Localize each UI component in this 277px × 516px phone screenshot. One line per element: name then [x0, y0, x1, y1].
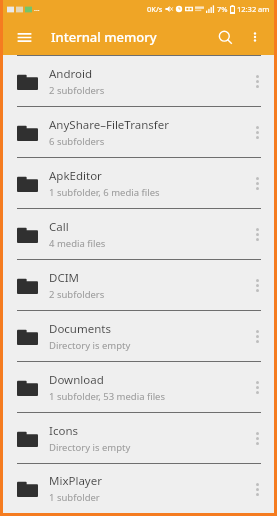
- button[interactable]: MixPlayer: [3, 464, 274, 513]
- button[interactable]: More options for ApkEditor: [246, 163, 268, 203]
- button[interactable]: ApkEditor: [3, 158, 274, 208]
- button[interactable]: Android: [3, 56, 274, 106]
- button[interactable]: More options for AnyShare–FileTransfer: [246, 112, 268, 152]
- staticText: Android: [49, 66, 93, 82]
- staticText: ...: [34, 4, 40, 14]
- staticText: Directory is empty: [49, 339, 131, 352]
- button[interactable]: More options for Call: [246, 214, 268, 254]
- button[interactable]: More options for Documents: [246, 316, 268, 356]
- button[interactable]: Documents: [3, 311, 274, 361]
- staticText: 0K/s: [147, 4, 163, 14]
- button[interactable]: Call: [3, 209, 274, 259]
- staticText: 2 subfolders: [49, 288, 105, 301]
- staticText: AnyShare–FileTransfer: [49, 117, 169, 133]
- button[interactable]: More options for Icons: [246, 418, 268, 458]
- button[interactable]: More options: [240, 22, 270, 52]
- button[interactable]: Icons: [3, 413, 274, 463]
- staticText: Internal memory: [51, 28, 157, 46]
- button[interactable]: AnyShare–FileTransfer: [3, 107, 274, 157]
- staticText: Download: [49, 372, 104, 388]
- button[interactable]: Search: [210, 22, 240, 52]
- staticText: 2 subfolders: [49, 84, 105, 97]
- staticText: Icons: [49, 423, 78, 439]
- staticText: 6 subfolders: [49, 135, 105, 148]
- staticText: ApkEditor: [49, 168, 102, 184]
- button[interactable]: More options for MixPlayer: [246, 469, 268, 509]
- button[interactable]: More options for Android: [246, 61, 268, 101]
- staticText: MixPlayer: [49, 473, 102, 489]
- button[interactable]: DCIM: [3, 260, 274, 310]
- button[interactable]: Open navigation drawer: [9, 22, 39, 52]
- button[interactable]: More options for Download: [246, 367, 268, 407]
- staticText: 1 subfolder: [49, 491, 100, 504]
- staticText: 12:32 am: [237, 4, 270, 14]
- staticText: 1 subfolder, 6 media files: [49, 186, 160, 199]
- staticText: Call: [49, 219, 69, 235]
- staticText: DCIM: [49, 270, 79, 286]
- button[interactable]: More options for DCIM: [246, 265, 268, 305]
- staticText: Directory is empty: [49, 441, 131, 454]
- button[interactable]: Download: [3, 362, 274, 412]
- staticText: 4 media files: [49, 237, 106, 250]
- staticText: 7%: [217, 4, 228, 14]
- staticText: 1 subfolder, 53 media files: [49, 390, 166, 403]
- staticText: Documents: [49, 321, 111, 337]
